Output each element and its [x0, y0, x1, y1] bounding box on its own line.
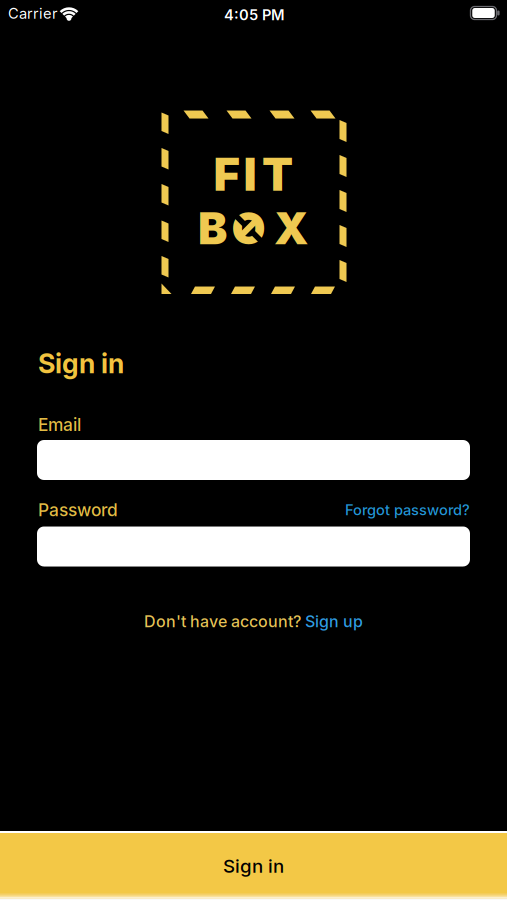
button[interactable]: Forgot password? [345, 501, 470, 519]
staticText: 4:05 PM [224, 6, 285, 24]
staticText: F [213, 148, 239, 201]
button[interactable]: Sign in [0, 833, 507, 900]
staticText: Forgot password? [345, 501, 470, 519]
button[interactable]: Sign up [305, 612, 363, 631]
staticText: I [243, 148, 256, 201]
staticText: Carrier [8, 5, 58, 22]
staticText: Sign up [305, 612, 363, 631]
staticText: T [262, 148, 293, 201]
staticText: Don't have account? [144, 612, 305, 631]
staticText: Sign in [38, 348, 124, 379]
button[interactable]: Password [37, 526, 470, 566]
staticText: Password [38, 500, 118, 520]
staticText: Email [38, 415, 81, 435]
staticText: O [231, 202, 265, 254]
staticText: X [274, 202, 309, 254]
button[interactable]: Email [37, 440, 470, 480]
staticText: B [198, 202, 227, 254]
staticText: Sign in [223, 855, 284, 877]
